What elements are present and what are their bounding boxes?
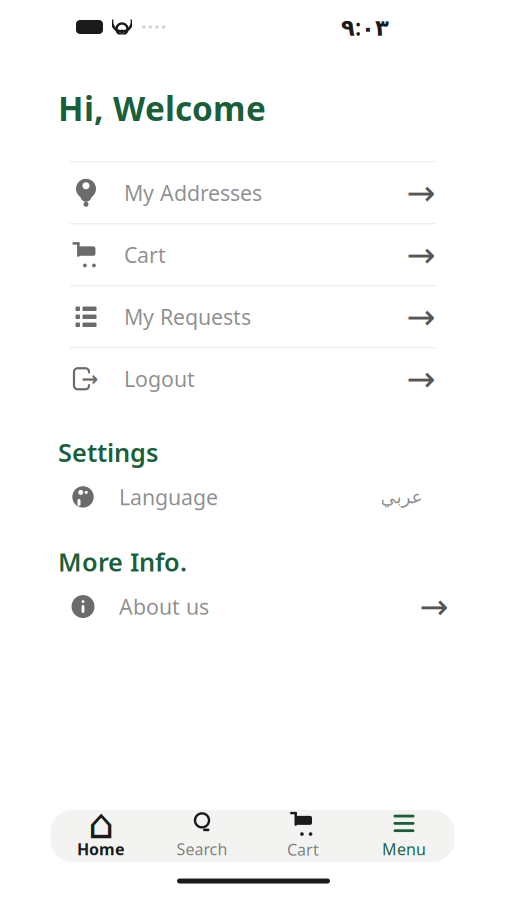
button[interactable]: Language xyxy=(0,469,507,525)
button[interactable]: Cart xyxy=(252,811,353,861)
staticText: Settings xyxy=(58,435,158,469)
button[interactable]: About us xyxy=(0,578,507,634)
staticText: Hi, Welcome xyxy=(58,86,266,130)
staticText: عربي xyxy=(380,486,422,507)
staticText: My Requests xyxy=(124,303,251,331)
button[interactable]: Cart xyxy=(70,224,436,286)
button[interactable]: → xyxy=(70,348,436,409)
staticText: → xyxy=(406,173,435,212)
staticText: About us xyxy=(119,592,209,621)
staticText: ٩:٠٣ xyxy=(341,12,389,42)
staticText: Cart xyxy=(287,839,319,860)
staticText: → xyxy=(406,297,435,336)
staticText: → xyxy=(81,367,98,390)
staticText: My Addresses xyxy=(124,179,262,207)
staticText: → xyxy=(406,235,435,274)
button[interactable]: My Requests xyxy=(70,286,436,348)
button[interactable]: My Addresses xyxy=(70,162,436,224)
staticText: Menu xyxy=(382,838,426,860)
staticText: Logout xyxy=(124,365,195,393)
staticText: → xyxy=(406,359,435,398)
staticText: More Info. xyxy=(58,545,187,578)
button[interactable]: Menu xyxy=(353,811,454,861)
button[interactable]: ⌂ xyxy=(50,811,151,861)
button[interactable]: Search xyxy=(151,811,252,861)
staticText: Language xyxy=(119,483,218,511)
staticText: Cart xyxy=(124,241,166,269)
staticText: Search xyxy=(176,838,227,860)
staticText: Home xyxy=(77,838,125,860)
staticText: → xyxy=(419,587,448,626)
staticText: ⌂ xyxy=(88,800,114,847)
